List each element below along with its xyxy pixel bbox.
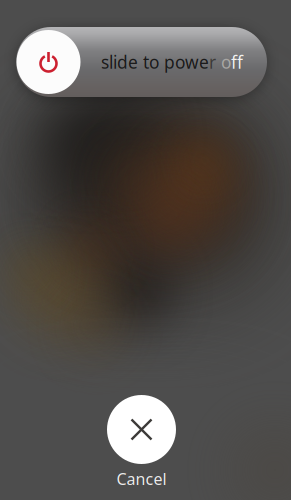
button[interactable]: Cancel bbox=[107, 395, 176, 490]
staticText: r bbox=[209, 50, 216, 74]
staticText: o bbox=[221, 50, 231, 74]
button[interactable]: slide to powe bbox=[16, 27, 267, 97]
staticText bbox=[216, 50, 221, 74]
staticText: slide to powe bbox=[101, 50, 209, 74]
staticText: ff bbox=[231, 50, 243, 74]
staticText: Cancel bbox=[116, 468, 166, 490]
